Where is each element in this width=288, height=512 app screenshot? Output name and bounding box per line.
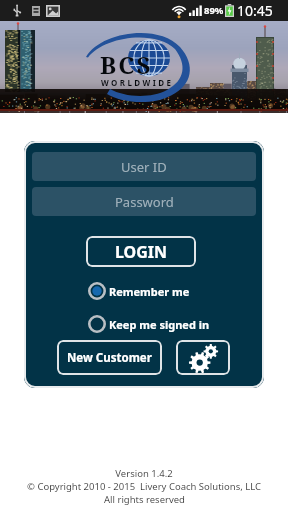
button[interactable]: Keep me signed in xyxy=(88,315,210,333)
button[interactable]: LOGIN xyxy=(86,236,196,267)
button[interactable]: Password xyxy=(32,187,256,216)
staticText: All rights reserved xyxy=(104,493,185,506)
staticText: Keep me signed in xyxy=(109,317,210,332)
button[interactable]: User ID xyxy=(32,152,256,181)
staticText: Remember me xyxy=(109,284,190,299)
staticText: Password xyxy=(115,193,174,211)
button[interactable]: New Customer xyxy=(57,340,162,375)
staticText: Version 1.4.2 xyxy=(115,467,173,480)
staticText: 10:45 xyxy=(237,1,273,20)
staticText: BCS xyxy=(100,48,153,81)
button[interactable]: Remember me xyxy=(88,282,190,300)
staticText: User ID xyxy=(121,158,167,176)
button[interactable]: Settings xyxy=(176,340,230,375)
staticText: New Customer xyxy=(67,350,152,366)
staticText: © Copyright 2010 - 2015 Livery Coach Sol… xyxy=(27,480,261,493)
staticText: 89% xyxy=(204,4,224,17)
staticText: LOGIN xyxy=(115,241,168,263)
staticText: W O R L D W I D E xyxy=(101,77,172,88)
